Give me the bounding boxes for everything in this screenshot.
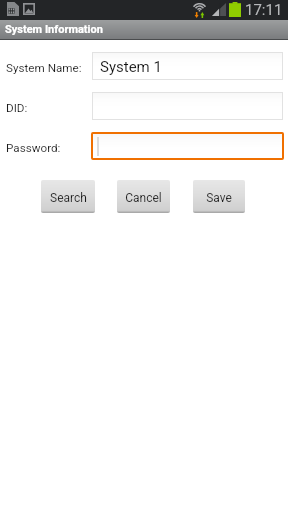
button[interactable]: DID (92, 92, 283, 120)
staticText: DID: (6, 101, 28, 115)
staticText: System Information (5, 23, 103, 36)
button[interactable]: Search (41, 180, 95, 213)
staticText: Search (50, 191, 87, 205)
button[interactable]: Cancel (117, 180, 170, 213)
button[interactable]: Save (193, 180, 245, 213)
staticText: Save (206, 191, 232, 205)
staticText: System Name: (6, 61, 82, 75)
staticText: Cancel (125, 191, 162, 205)
button[interactable]: System Name (92, 52, 283, 80)
staticText: System 1 (100, 58, 162, 76)
staticText: 17:11 (245, 1, 283, 19)
staticText: Password: (6, 141, 61, 155)
button[interactable]: Password (91, 132, 284, 160)
